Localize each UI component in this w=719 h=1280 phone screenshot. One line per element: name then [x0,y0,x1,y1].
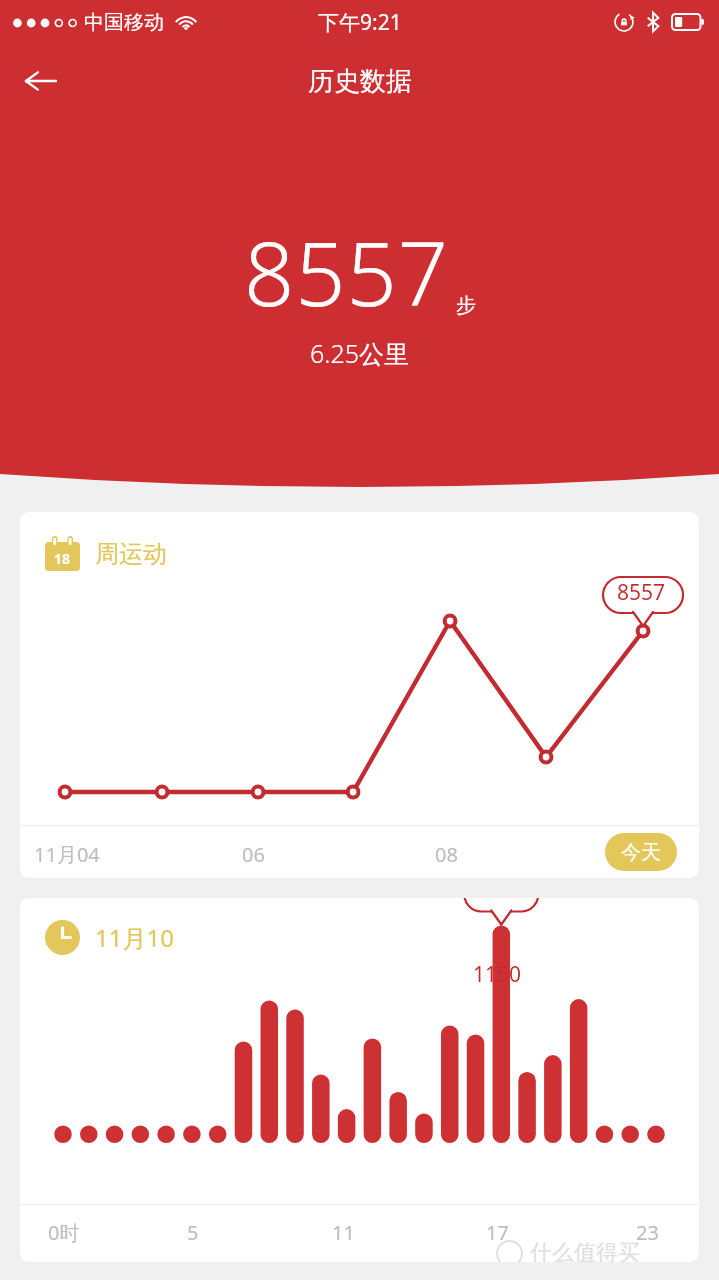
staticText: 23 [636,1219,659,1246]
staticText: 11月04 [34,841,100,868]
staticText: 步 [456,293,476,318]
staticText: 17 [486,1219,509,1246]
staticText: 今天 [621,840,661,865]
staticText: 周运动 [95,539,167,569]
button[interactable]: 今天 [605,833,677,871]
button[interactable]: 18 [20,512,699,878]
staticText: 11 [332,1219,355,1246]
staticText: 0时 [48,1219,80,1246]
staticText: 18 [54,549,71,568]
staticText: 5 [187,1219,199,1246]
staticText: 8557 [617,578,666,607]
staticText: 中国移动 [84,10,164,35]
staticText: 下午9:21 [318,8,402,37]
staticText: 6.25公里 [310,336,409,370]
staticText: 11月10 [95,921,174,954]
staticText: 06 [242,841,265,868]
staticText: 08 [435,841,458,868]
staticText: 什么值得买 [530,1239,640,1262]
staticText: 1150 [473,960,522,989]
staticText: 8557 [244,212,449,332]
button[interactable]: Back [12,52,70,110]
staticText: 历史数据 [308,65,412,98]
button[interactable]: 11月10 [20,898,699,1262]
